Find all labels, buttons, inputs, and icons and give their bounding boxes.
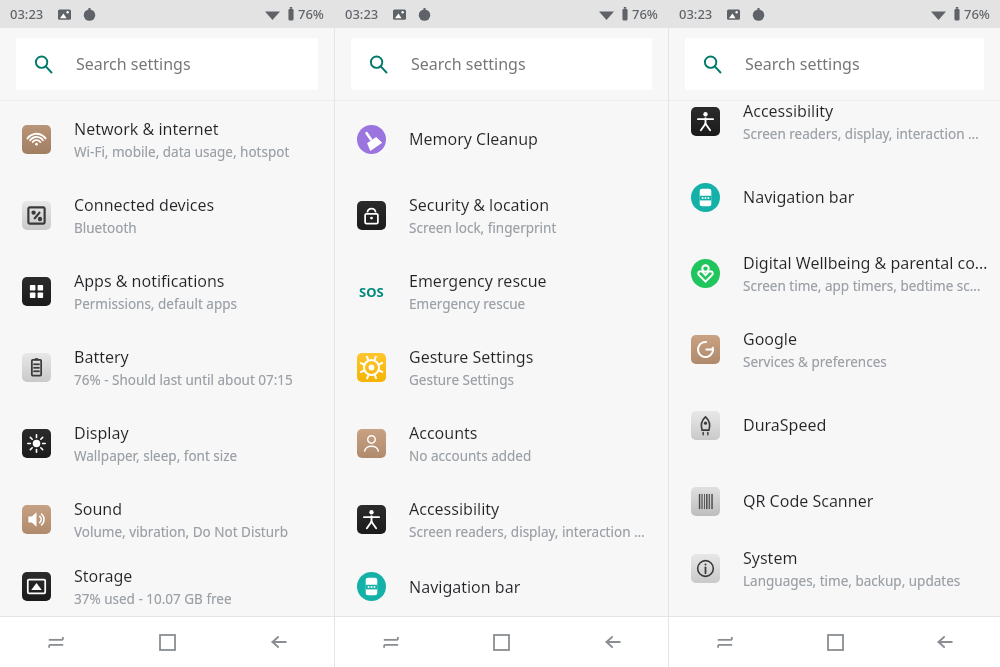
staticText: Screen readers, display, interaction … — [743, 125, 979, 143]
button[interactable]: Security & location — [335, 177, 668, 253]
staticText: Services & preferences — [743, 353, 887, 371]
staticText: Google — [743, 328, 798, 350]
staticText: Wallpaper, sleep, font size — [74, 447, 238, 465]
button[interactable]: Search settings — [16, 38, 318, 90]
button[interactable]: Home — [112, 617, 223, 667]
staticText: Search settings — [411, 53, 526, 75]
button[interactable]: Sound — [0, 481, 334, 557]
staticText: Bluetooth — [74, 219, 137, 237]
staticText: 03:23 — [679, 5, 713, 23]
staticText: Wi-Fi, mobile, data usage, hotspot — [74, 143, 290, 161]
staticText: System — [743, 547, 798, 569]
button[interactable]: QR Code Scanner — [669, 463, 1000, 539]
staticText: 76% — [964, 5, 990, 23]
button[interactable]: Back — [557, 617, 668, 667]
button[interactable]: Recent apps — [0, 617, 112, 667]
staticText: 76% — [298, 5, 324, 23]
staticText: No accounts added — [409, 447, 532, 465]
staticText: Permissions, default apps — [74, 295, 237, 313]
staticText: Accounts — [409, 422, 478, 444]
button[interactable]: Apps & notifications — [0, 253, 334, 329]
staticText: Gesture Settings — [409, 371, 514, 389]
button[interactable]: Recent apps — [669, 617, 780, 667]
button[interactable]: Recent apps — [335, 617, 446, 667]
staticText: Memory Cleanup — [409, 128, 538, 150]
staticText: Navigation bar — [409, 576, 521, 598]
button[interactable]: Display — [0, 405, 334, 481]
button[interactable]: Accounts — [335, 405, 668, 481]
staticText: Emergency rescue — [409, 270, 547, 292]
staticText: Search settings — [76, 53, 191, 75]
button[interactable]: Back — [890, 617, 1000, 667]
staticText: Security & location — [409, 194, 550, 216]
staticText: Digital Wellbeing & parental contr… — [743, 252, 988, 274]
button[interactable]: Navigation bar — [335, 557, 668, 616]
staticText: Accessibility — [409, 498, 500, 520]
button[interactable]: Storage — [0, 557, 334, 616]
button[interactable]: Navigation bar — [669, 159, 1000, 235]
staticText: 03:23 — [10, 5, 44, 23]
staticText: DuraSpeed — [743, 414, 827, 436]
button[interactable]: Accessibility — [669, 83, 1000, 159]
button[interactable]: Memory Cleanup — [335, 101, 668, 177]
staticText: QR Code Scanner — [743, 490, 874, 512]
staticText: 03:23 — [345, 5, 379, 23]
button[interactable]: Battery — [0, 329, 334, 405]
staticText: SOS — [359, 283, 384, 301]
staticText: Screen time, app timers, bedtime sc… — [743, 277, 981, 295]
button[interactable]: Digital Wellbeing & parental contr… — [669, 235, 1000, 311]
staticText: 37% used - 10.07 GB free — [74, 590, 232, 608]
button[interactable]: System — [669, 539, 1000, 598]
staticText: Languages, time, backup, updates — [743, 572, 961, 590]
button[interactable]: Gesture Settings — [335, 329, 668, 405]
staticText: Screen lock, fingerprint — [409, 219, 557, 237]
button[interactable]: Connected devices — [0, 177, 334, 253]
button[interactable]: DuraSpeed — [669, 387, 1000, 463]
button[interactable]: Accessibility — [335, 481, 668, 557]
staticText: Sound — [74, 498, 123, 520]
staticText: Display — [74, 422, 129, 444]
staticText: Apps & notifications — [74, 270, 225, 292]
staticText: Navigation bar — [743, 186, 855, 208]
button[interactable]: SOS — [335, 253, 668, 329]
staticText: Screen readers, display, interaction … — [409, 523, 645, 541]
button[interactable]: Back — [223, 617, 334, 667]
button[interactable]: Home — [780, 617, 890, 667]
staticText: Search settings — [745, 53, 860, 75]
button[interactable]: Home — [446, 617, 557, 667]
staticText: Gesture Settings — [409, 346, 534, 368]
staticText: Storage — [74, 565, 133, 587]
button[interactable]: Search settings — [351, 38, 652, 90]
staticText: Volume, vibration, Do Not Disturb — [74, 523, 288, 541]
staticText: Connected devices — [74, 194, 215, 216]
staticText: 76% — [632, 5, 658, 23]
staticText: Accessibility — [743, 100, 834, 122]
staticText: Battery — [74, 346, 129, 368]
button[interactable]: Search settings — [685, 38, 984, 90]
button[interactable]: Network & internet — [0, 101, 334, 177]
staticText: Network & internet — [74, 118, 219, 140]
staticText: 76% - Should last until about 07:15 — [74, 371, 293, 389]
button[interactable]: Google — [669, 311, 1000, 387]
staticText: Emergency rescue — [409, 295, 526, 313]
